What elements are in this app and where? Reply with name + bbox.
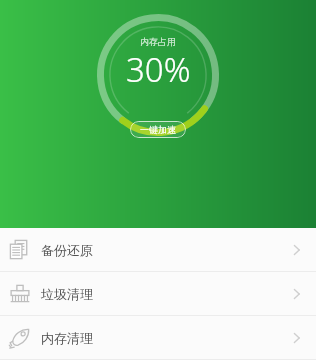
button[interactable]: 内存清理 [0, 316, 316, 359]
staticText: 内存占用 [140, 36, 176, 47]
staticText: 垃圾清理 [41, 286, 93, 302]
staticText: 备份还原 [41, 242, 93, 258]
staticText: 30% [126, 47, 191, 92]
other: Open 垃圾清理 [288, 286, 304, 302]
button[interactable]: 一键加速 [130, 121, 186, 138]
staticText: 内存清理 [41, 330, 93, 346]
button[interactable]: 垃圾清理 [0, 272, 316, 315]
button[interactable]: 备份还原 [0, 228, 316, 271]
staticText: 一键加速 [140, 124, 176, 135]
other: Open 内存清理 [288, 330, 304, 346]
other: Open 备份还原 [288, 242, 304, 258]
